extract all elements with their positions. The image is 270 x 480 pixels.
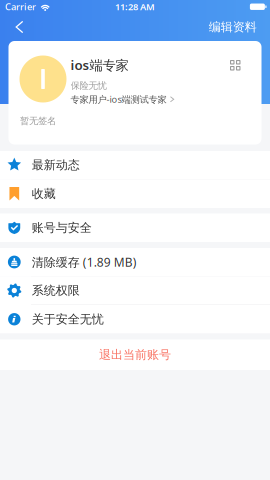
button[interactable]: 清除缓存 (1.89 MB) bbox=[0, 248, 270, 276]
staticText: 编辑资料 bbox=[209, 20, 257, 34]
staticText: 关于安全无忧 bbox=[32, 312, 104, 327]
button[interactable]: 返回 bbox=[0, 13, 37, 40]
button[interactable]: 退出当前账号 bbox=[0, 339, 270, 370]
staticText: 清除缓存 (1.89 MB) bbox=[32, 254, 137, 270]
staticText: 退出当前账号 bbox=[99, 347, 171, 362]
staticText: Carrier bbox=[5, 1, 36, 13]
staticText: 系统权限 bbox=[32, 283, 80, 298]
staticText: 收藏 bbox=[32, 186, 56, 201]
staticText: 11:28 AM bbox=[115, 1, 155, 13]
staticText: 最新动态 bbox=[32, 158, 80, 172]
button[interactable]: 编辑资料 bbox=[199, 13, 270, 40]
button[interactable]: 账号与安全 bbox=[0, 213, 270, 242]
staticText: ios端专家 bbox=[70, 56, 128, 74]
button[interactable]: 最新动态 bbox=[0, 151, 270, 179]
staticText: 保险无忧 bbox=[70, 80, 106, 91]
staticText: 专家用户-ios端测试专家 bbox=[70, 93, 166, 105]
button[interactable]: 关于安全无忧 bbox=[0, 305, 270, 333]
button[interactable]: 我的二维码 bbox=[226, 56, 244, 74]
button[interactable]: 收藏 bbox=[0, 179, 270, 208]
button[interactable]: 系统权限 bbox=[0, 276, 270, 305]
staticText: 暂无签名 bbox=[20, 115, 56, 127]
staticText: 账号与安全 bbox=[32, 220, 92, 235]
button[interactable]: 专家用户-ios端测试专家 bbox=[70, 90, 175, 104]
